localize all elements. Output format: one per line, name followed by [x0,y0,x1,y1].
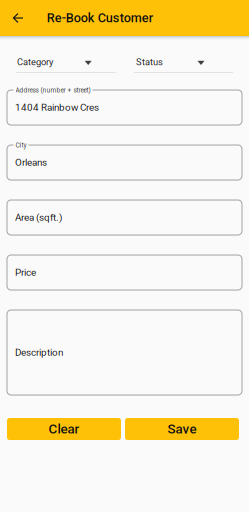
staticText: 1404 Rainbow Cres [15,102,99,113]
staticText: City [15,141,26,149]
staticText: Price [15,267,36,278]
staticText: Address (number + street) [15,86,90,94]
button[interactable]: Clear [7,418,121,440]
staticText: Re-Book Customer [47,11,153,25]
button[interactable]: Save [125,418,239,440]
button[interactable]: Back [0,0,36,36]
button[interactable]: Status [134,53,233,73]
staticText: Save [167,421,196,437]
staticText: Category [17,57,53,68]
staticText: Description [15,347,63,358]
staticText: Clear [48,421,79,437]
staticText: Area (sqft.) [15,212,62,223]
staticText: Orleans [15,157,47,168]
staticText: Status [136,57,163,68]
button[interactable]: Category [16,53,116,73]
